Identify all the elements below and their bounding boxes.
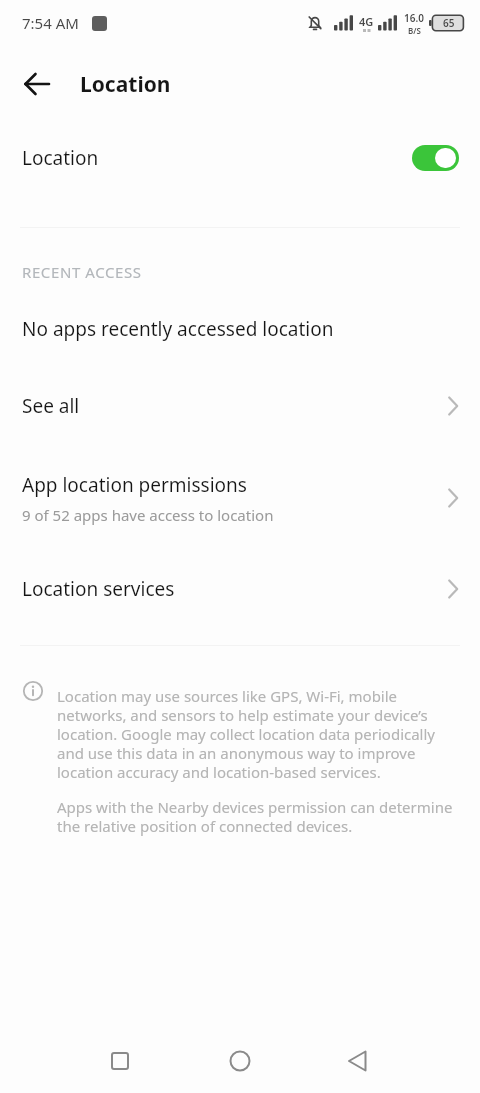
staticText: 4G: [359, 14, 374, 29]
button[interactable]: [160, 1027, 320, 1093]
staticText: Location: [22, 145, 99, 171]
button[interactable]: [412, 145, 459, 171]
button[interactable]: App location permissions: [0, 458, 480, 538]
staticText: B/S: [408, 25, 421, 36]
button[interactable]: [24, 72, 50, 96]
staticText: 7:54 AM: [22, 13, 79, 33]
staticText: 9 of 52 apps have access to location: [22, 505, 274, 525]
staticText: 65: [443, 16, 455, 30]
button[interactable]: [320, 1027, 480, 1093]
button[interactable]: Location: [0, 122, 480, 194]
staticText: Location services: [22, 576, 175, 602]
staticText: Apps with the Nearby devices permission …: [57, 797, 453, 837]
staticText: No apps recently accessed location: [22, 316, 334, 342]
staticText: App location permissions: [22, 472, 247, 498]
button[interactable]: See all: [0, 378, 480, 434]
staticText: See all: [22, 393, 80, 419]
staticText: 16.0: [404, 11, 424, 25]
staticText: Location may use sources like GPS, Wi-Fi…: [57, 686, 436, 783]
staticText: Location: [80, 70, 171, 99]
button[interactable]: [0, 1027, 160, 1093]
button[interactable]: Location services: [0, 561, 480, 617]
staticText: RECENT ACCESS: [22, 262, 142, 282]
